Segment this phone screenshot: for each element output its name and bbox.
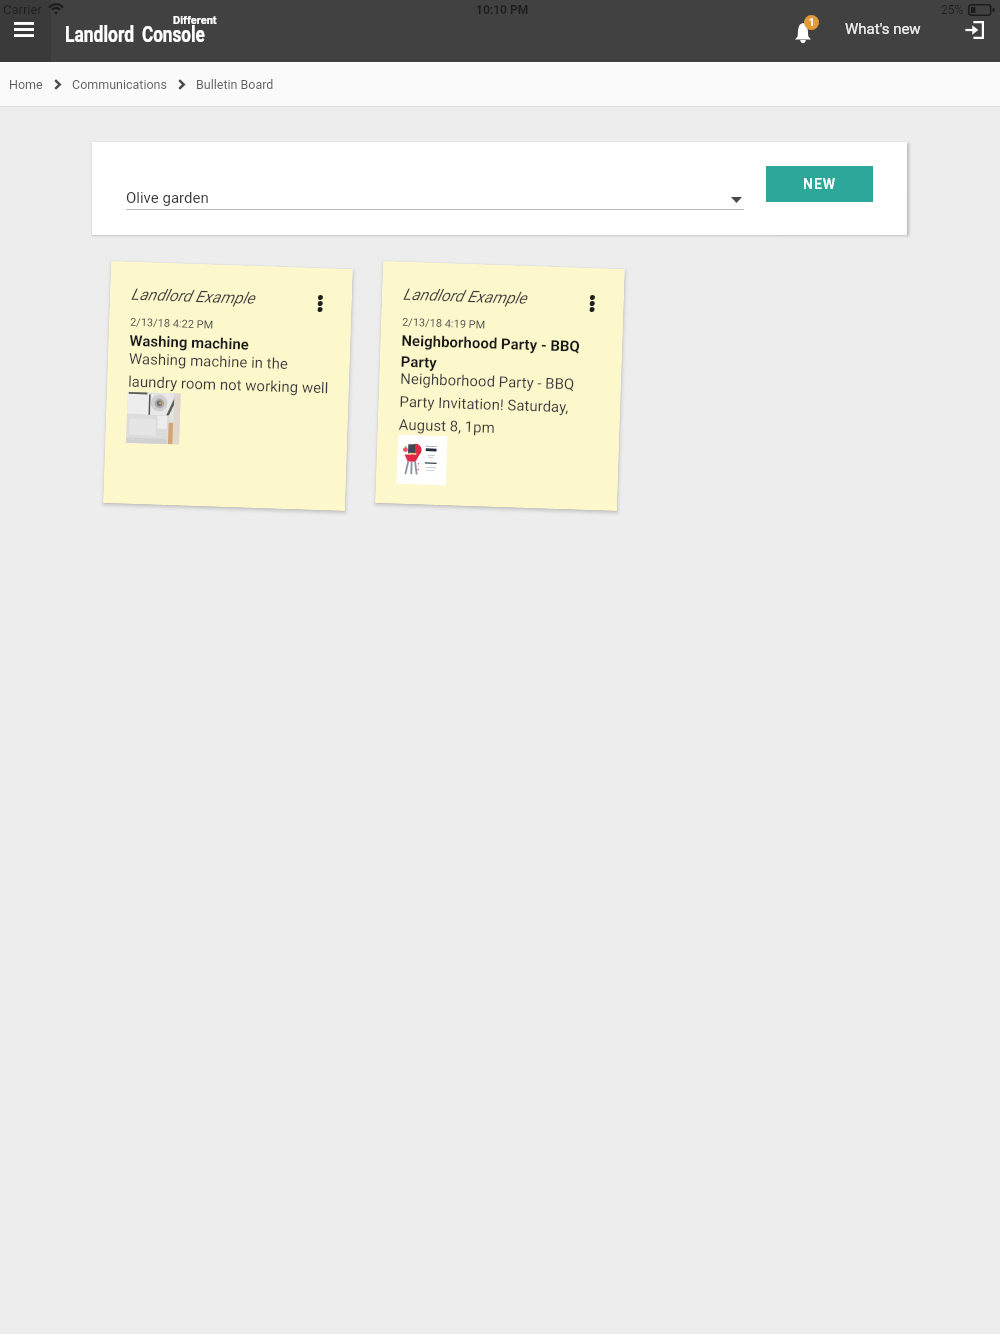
staticText: 2/13/18 4:19 PM xyxy=(402,316,486,331)
staticText: Landlord Example xyxy=(131,285,255,308)
button[interactable]: More options xyxy=(306,290,333,316)
button[interactable]: Log out xyxy=(954,10,994,50)
button[interactable]: Notifications xyxy=(788,11,824,51)
staticText: 25% xyxy=(941,3,964,17)
button[interactable]: What's new xyxy=(837,14,929,44)
staticText: NEW xyxy=(803,176,837,192)
button[interactable]: Menu xyxy=(0,20,51,62)
button[interactable]: Landlord xyxy=(60,20,230,62)
staticText: Neighborhood Party - BBQ Party xyxy=(400,332,609,376)
staticText: 1 xyxy=(809,17,815,29)
staticText: Different xyxy=(173,14,217,27)
staticText: Carrier xyxy=(3,2,42,17)
staticText: Landlord xyxy=(65,22,135,47)
button[interactable]: Landlord Example xyxy=(375,261,625,511)
staticText: Bulletin Board xyxy=(196,77,274,92)
staticText: 2/13/18 4:22 PM xyxy=(130,316,214,331)
button[interactable]: NEW xyxy=(766,166,873,202)
button[interactable]: More options xyxy=(578,290,605,316)
staticText: Neighborhood Party - BBQ Party Invitatio… xyxy=(398,370,607,440)
button[interactable]: Communications xyxy=(68,71,171,98)
staticText: Home xyxy=(9,77,43,92)
button[interactable]: Home xyxy=(5,71,47,98)
staticText: Washing machine in the laundry room not … xyxy=(128,350,336,397)
staticText: Communications xyxy=(72,77,167,92)
staticText: Landlord Example xyxy=(403,285,527,308)
staticText: What's new xyxy=(845,20,921,38)
staticText: Olive garden xyxy=(126,189,209,207)
staticText: Console xyxy=(142,22,205,47)
staticText: Washing machine xyxy=(129,332,250,354)
button[interactable]: Olive garden xyxy=(122,182,748,214)
button[interactable]: Landlord Example xyxy=(103,261,353,511)
staticText: 10:10 PM xyxy=(476,3,529,17)
